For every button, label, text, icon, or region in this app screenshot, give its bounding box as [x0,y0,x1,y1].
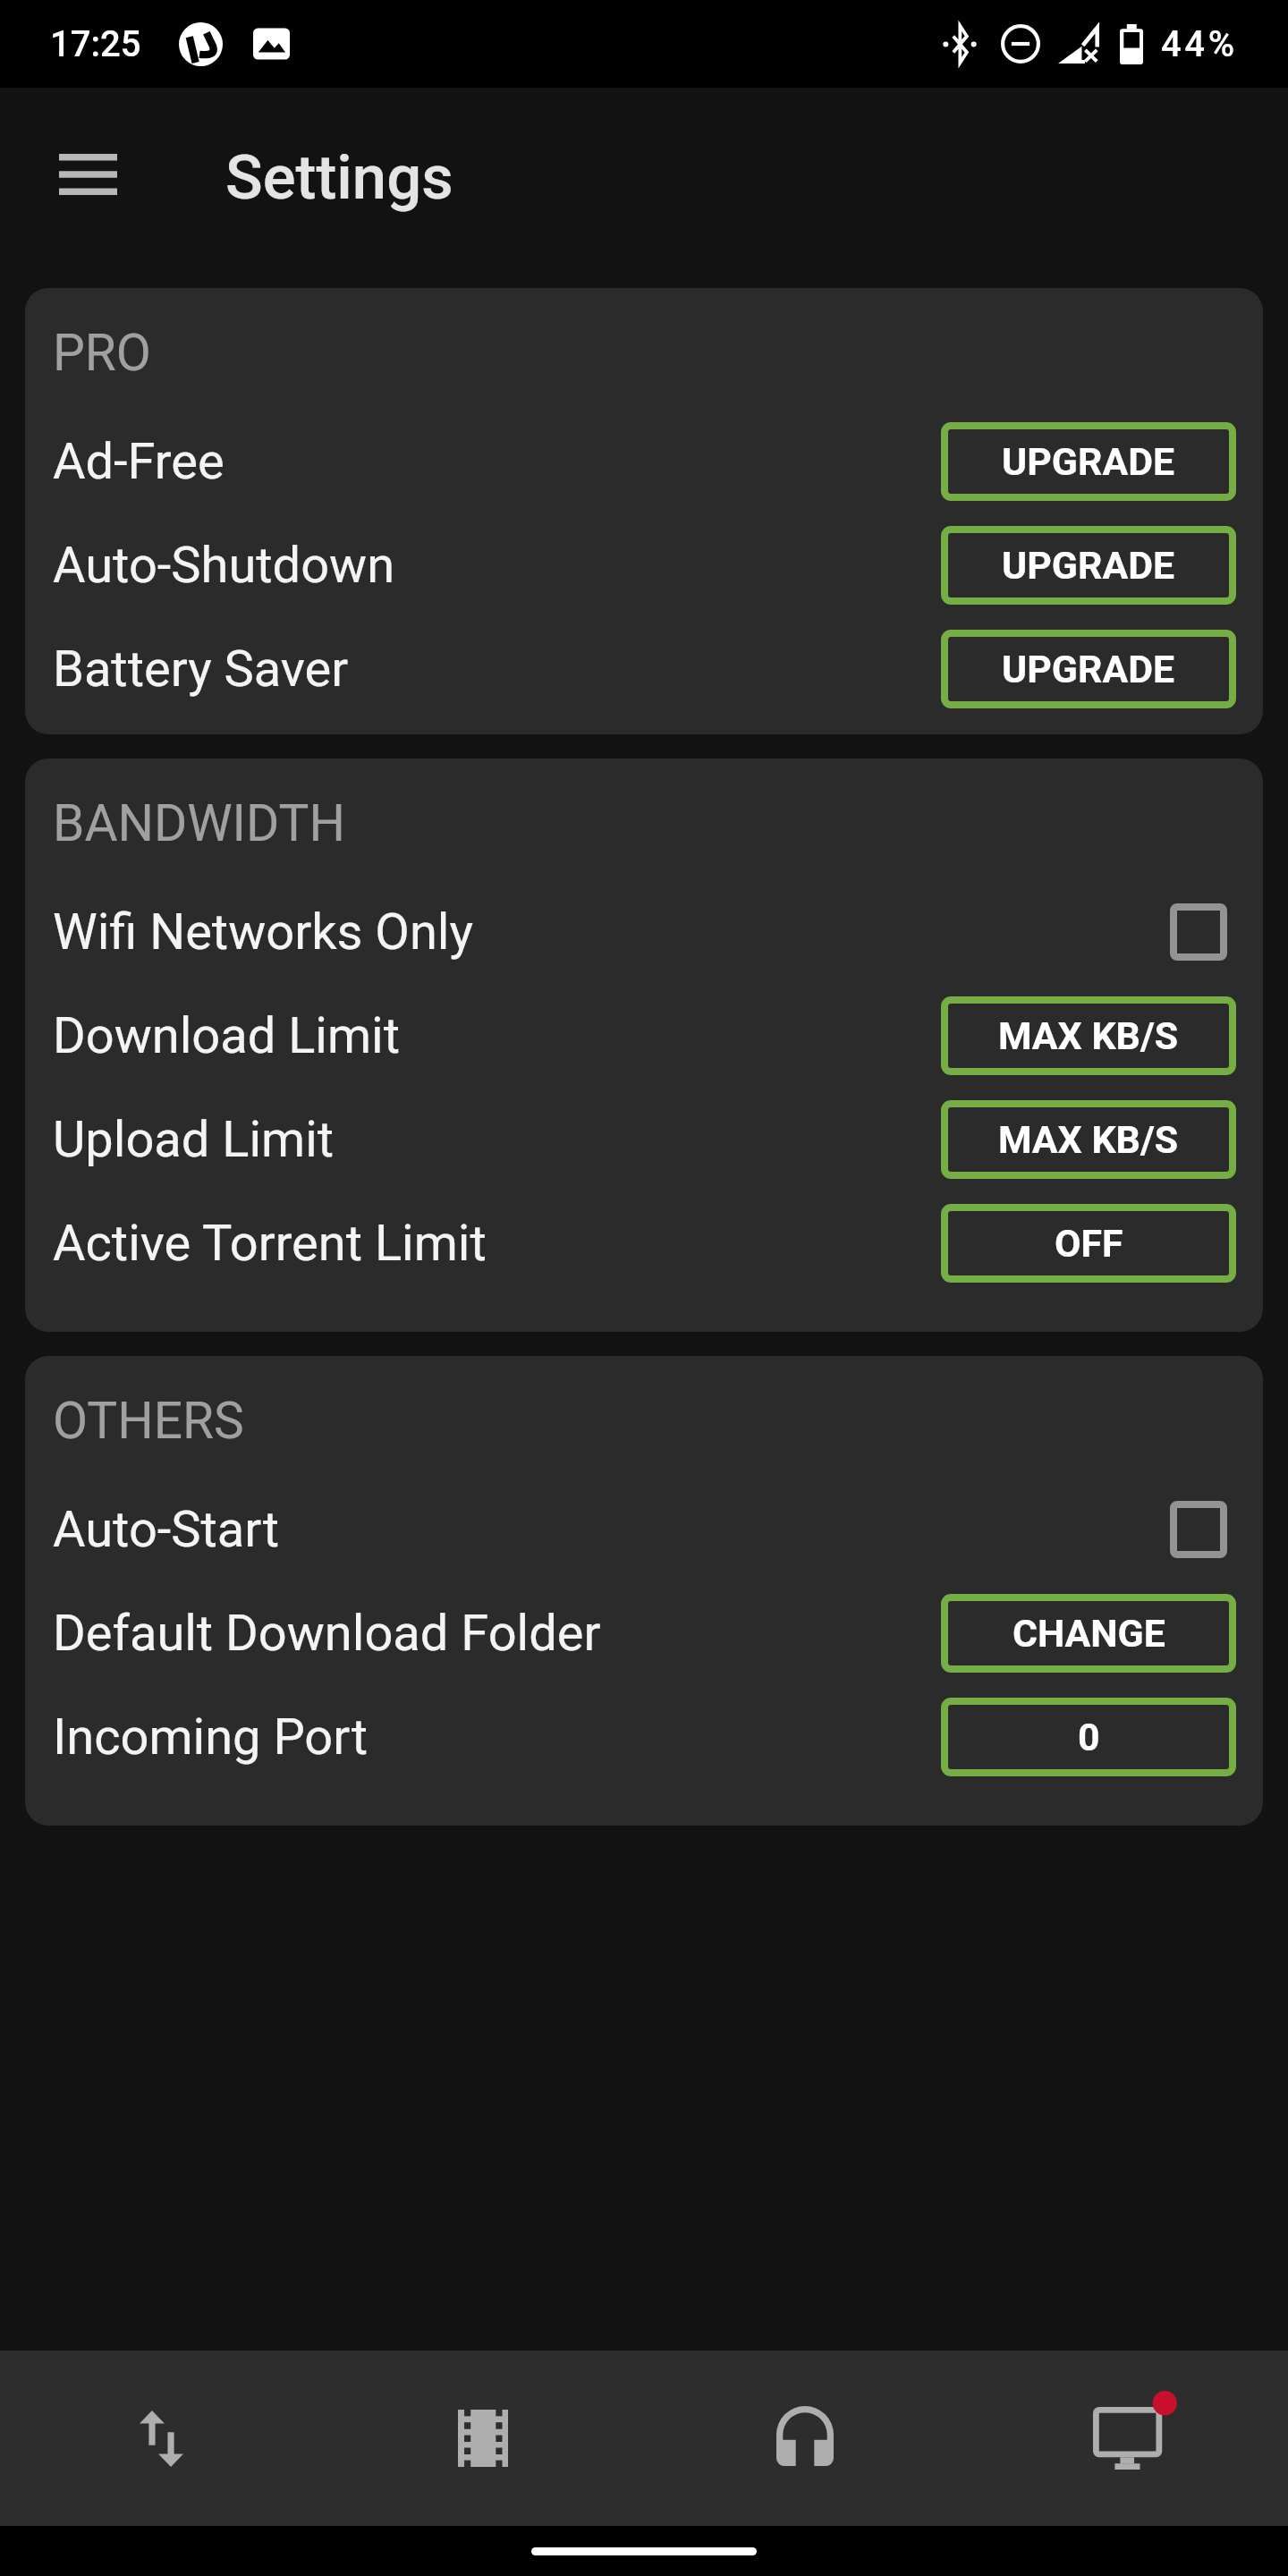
button[interactable]: Active Torrent Limit [25,1191,1263,1295]
staticText: Upload Limit [53,1110,335,1169]
button[interactable]: UPGRADE [941,422,1236,501]
staticText: UPGRADE [1002,647,1175,691]
staticText: Auto-Shutdown [53,536,395,595]
staticText: Auto-Start [53,1500,279,1559]
button[interactable]: Checkbox, unchecked [941,893,1236,971]
button[interactable]: MAX KB/S [941,996,1236,1075]
staticText: 44% [1161,23,1238,65]
button[interactable]: Upload Limit [25,1088,1263,1191]
button[interactable]: Auto-Shutdown [25,513,1263,617]
staticText: MAX KB/S [998,1117,1179,1162]
button[interactable]: Default Download Folder [25,1581,1263,1685]
button[interactable]: Remote [966,2351,1288,2526]
button[interactable]: Battery Saver [25,617,1263,721]
staticText: Download Limit [53,1006,401,1065]
button[interactable]: Wifi Networks Only [25,880,1263,984]
button[interactable]: Music [644,2351,966,2526]
staticText: UPGRADE [1002,543,1175,588]
button[interactable]: CHANGE [941,1594,1236,1673]
staticText: MAX KB/S [998,1013,1179,1058]
staticText: BANDWIDTH [53,793,345,853]
staticText: PRO [53,323,151,383]
button[interactable]: Checkbox, unchecked [941,1490,1236,1569]
button[interactable]: Incoming Port [25,1685,1263,1789]
staticText: Wifi Networks Only [53,902,473,962]
staticText: CHANGE [1013,1611,1165,1656]
staticText: OFF [1055,1221,1123,1266]
button[interactable]: UPGRADE [941,526,1236,605]
staticText: OTHERS [53,1391,244,1451]
staticText: Incoming Port [53,1707,368,1767]
button[interactable]: Download Limit [25,984,1263,1088]
button[interactable]: UPGRADE [941,630,1236,708]
button[interactable]: Open navigation drawer [30,120,145,234]
button[interactable]: Ad-Free [25,410,1263,513]
staticText: 0 [1078,1715,1100,1759]
staticText: UPGRADE [1002,439,1175,484]
staticText: Default Download Folder [53,1604,601,1663]
button[interactable]: Auto-Start [25,1478,1263,1581]
staticText: Ad-Free [53,432,225,491]
button[interactable]: MAX KB/S [941,1100,1236,1179]
button[interactable]: OFF [941,1204,1236,1283]
staticText: Battery Saver [53,640,349,699]
staticText: Settings [225,141,453,214]
button[interactable]: 0 [941,1698,1236,1776]
button[interactable]: Videos [322,2351,644,2526]
staticText: Active Torrent Limit [53,1214,487,1273]
staticText: 17:25 [50,23,141,65]
button[interactable]: Transfers [0,2351,322,2526]
